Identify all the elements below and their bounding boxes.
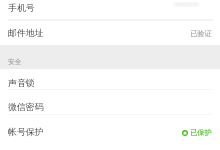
staticText: 已保护 — [190, 128, 212, 137]
staticText: 微信密码 — [8, 101, 44, 112]
staticText: 已验证 — [190, 29, 212, 38]
staticText: 手机号 — [8, 2, 35, 13]
button[interactable] — [0, 114, 220, 139]
staticText: 声音锁 — [8, 77, 35, 88]
staticText: 安全 — [8, 58, 22, 66]
staticText: 邮件地址 — [8, 27, 44, 38]
staticText: 帐号保护 — [8, 126, 44, 137]
button[interactable] — [0, 90, 220, 114]
button[interactable] — [0, 19, 220, 45]
button[interactable] — [0, 0, 220, 19]
button[interactable] — [0, 68, 220, 90]
